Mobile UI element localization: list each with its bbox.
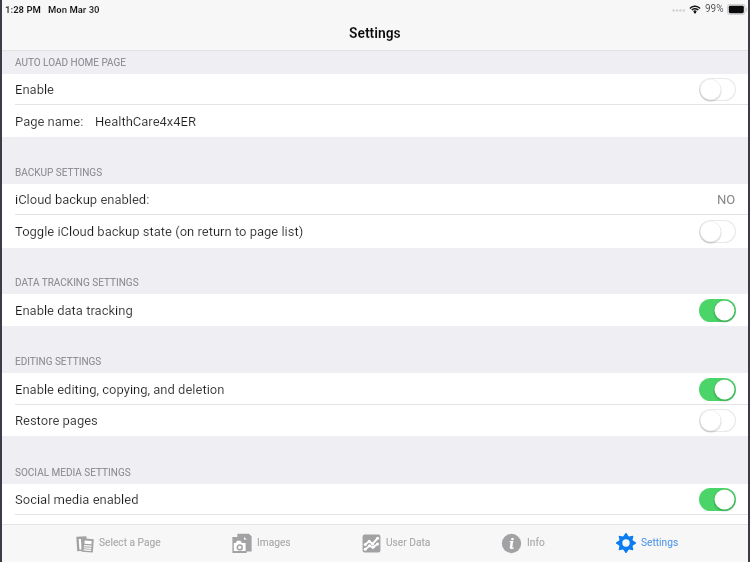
button[interactable]: Enable editing, copying, and deletion [0, 373, 750, 405]
button[interactable]: Select a Page [76, 524, 161, 562]
button[interactable]: Images [232, 524, 291, 562]
staticText: AUTO LOAD HOME PAGE [15, 57, 127, 69]
staticText: Enable [15, 82, 54, 97]
staticText: Restore pages [15, 413, 98, 428]
button[interactable]: Switch off [699, 78, 736, 101]
button[interactable]: Toggle iCloud backup state (on return to… [0, 215, 750, 248]
staticText: i [509, 534, 514, 553]
staticText: Page name: [15, 114, 84, 129]
button[interactable]: Switch off [699, 220, 736, 243]
button[interactable]: Enable [0, 74, 750, 105]
staticText: NO [717, 192, 736, 207]
staticText: 1:28 PM [5, 4, 41, 15]
staticText: SOCIAL MEDIA SETTINGS [15, 467, 131, 479]
button[interactable]: User Data [362, 524, 431, 562]
staticText: DATA TRACKING SETTINGS [15, 277, 139, 289]
button[interactable]: Restore pages [0, 405, 750, 436]
staticText: BACKUP SETTINGS [15, 167, 103, 179]
staticText: 99% [705, 3, 724, 15]
button[interactable]: iCloud backup enabled: [0, 184, 750, 215]
button[interactable]: Switch on [699, 378, 736, 401]
button[interactable]: Switch off [699, 409, 736, 432]
button[interactable]: Settings [616, 524, 679, 562]
staticText: Social media enabled [15, 492, 139, 507]
staticText: Toggle iCloud backup state (on return to… [15, 224, 304, 239]
staticText: Settings [349, 25, 401, 41]
staticText: EDITING SETTINGS [15, 356, 102, 368]
button[interactable]: Social media enabled [0, 484, 750, 515]
button[interactable]: Switch on [699, 488, 736, 511]
staticText: Mon Mar 30 [48, 4, 100, 15]
staticText: Enable data tracking [15, 303, 133, 318]
button[interactable]: Switch on [699, 299, 736, 322]
staticText: Select a Page [99, 537, 161, 549]
staticText: Settings [641, 537, 679, 549]
staticText: Images [257, 537, 291, 549]
button[interactable]: Enable data tracking [0, 294, 750, 326]
button[interactable]: Info [501, 524, 545, 562]
staticText: iCloud backup enabled: [15, 192, 150, 207]
staticText: User Data [386, 537, 431, 549]
button[interactable]: Page name: [0, 105, 750, 137]
staticText: HealthCare4x4ER [95, 114, 196, 129]
staticText: Enable editing, copying, and deletion [15, 382, 225, 397]
staticText: Info [527, 537, 545, 549]
